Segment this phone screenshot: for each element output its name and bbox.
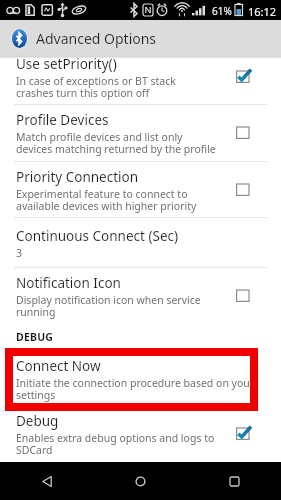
staticText: Experimental feature to connect to avail… (16, 187, 197, 213)
staticText: 3 (16, 246, 23, 260)
staticText: Profile Devices (16, 111, 109, 129)
button[interactable]: Back (0, 462, 93, 500)
button[interactable]: Continuous Connect (Sec) (0, 224, 281, 267)
staticText: Connect Now (16, 357, 101, 375)
button[interactable]: Profile Devices (0, 108, 281, 161)
button[interactable]: Home (93, 462, 187, 500)
staticText: 16:12 (248, 4, 277, 19)
staticText: Match profile devices and list only devi… (16, 130, 216, 156)
staticText: Display notification icon when service r… (16, 293, 201, 319)
staticText: Enables extra debug options and logs to … (16, 431, 215, 457)
staticText: DEBUG (16, 330, 54, 344)
staticText: Priority Connection (16, 168, 139, 186)
button[interactable]: Debug (0, 409, 281, 460)
button[interactable]: Use setPriority() (0, 52, 281, 104)
button[interactable]: Priority Connection (0, 165, 281, 217)
button[interactable]: Notification Icon (0, 271, 281, 323)
button[interactable]: Connect Now (16, 357, 250, 407)
staticText: Debug (16, 412, 59, 430)
staticText: Advanced Options (36, 29, 157, 48)
button[interactable]: Recent apps (187, 462, 281, 500)
staticText: Continuous Connect (Sec) (16, 227, 179, 245)
staticText: 61% (212, 4, 232, 18)
staticText: In case of exceptions or BT stack crashe… (16, 74, 176, 100)
staticText: Use setPriority() (16, 55, 117, 73)
staticText: Notification Icon (16, 274, 121, 292)
staticText: Initiate the connection procedure based … (16, 376, 250, 402)
